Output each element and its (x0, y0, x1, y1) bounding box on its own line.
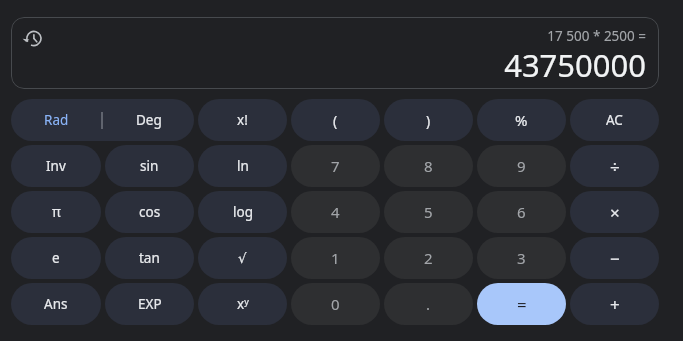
button[interactable]: AC (570, 99, 659, 141)
button[interactable]: − (570, 237, 659, 279)
button[interactable]: 8 (384, 145, 473, 187)
staticText: − (610, 247, 620, 270)
staticText: . (426, 294, 431, 314)
button[interactable]: xy (198, 283, 287, 325)
button[interactable]: 4 (291, 191, 380, 233)
staticText: ÷ (610, 155, 620, 178)
staticText: 4 (331, 202, 340, 222)
button[interactable]: Rad (11, 99, 194, 141)
button[interactable]: EXP (105, 283, 194, 325)
button[interactable]: ÷ (570, 145, 659, 187)
button[interactable]: ( (291, 99, 380, 141)
button[interactable]: ) (384, 99, 473, 141)
button[interactable]: cos (105, 191, 194, 233)
staticText: e (52, 249, 60, 267)
staticText: = (517, 293, 527, 316)
button[interactable]: 3 (477, 237, 566, 279)
button[interactable]: + (570, 283, 659, 325)
button[interactable]: Ans (11, 283, 101, 325)
staticText: AC (606, 111, 623, 129)
button[interactable]: 6 (477, 191, 566, 233)
staticText: 5 (424, 202, 433, 222)
button[interactable]: x! (198, 99, 287, 141)
staticText: π (52, 203, 61, 221)
staticText: 2 (424, 248, 433, 268)
button[interactable]: tan (105, 237, 194, 279)
staticText: ) (426, 111, 431, 130)
staticText: 6 (517, 202, 526, 222)
staticText: 43750000 (504, 44, 646, 86)
button[interactable]: √ (198, 237, 287, 279)
button[interactable]: sin (105, 145, 194, 187)
staticText: x! (237, 111, 248, 129)
button[interactable]: × (570, 191, 659, 233)
staticText: cos (139, 203, 161, 221)
button[interactable]: 2 (384, 237, 473, 279)
staticText: 17 500 * 2500 = (547, 27, 646, 45)
button[interactable]: log (198, 191, 287, 233)
staticText: 1 (331, 248, 340, 268)
staticText: 7 (331, 156, 340, 176)
staticText: ( (333, 111, 338, 130)
button[interactable]: . (384, 283, 473, 325)
staticText: % (515, 110, 528, 130)
button[interactable]: π (11, 191, 101, 233)
staticText: ln (237, 157, 249, 175)
staticText: Ans (44, 295, 68, 313)
staticText: Rad (44, 111, 69, 129)
staticText: 3 (517, 248, 526, 268)
staticText: + (610, 293, 620, 316)
staticText: 8 (424, 156, 433, 176)
button[interactable]: 0 (291, 283, 380, 325)
staticText: Deg (136, 111, 162, 129)
button[interactable]: e (11, 237, 101, 279)
button[interactable]: % (477, 99, 566, 141)
button[interactable]: 1 (291, 237, 380, 279)
button[interactable]: 9 (477, 145, 566, 187)
button[interactable]: ln (198, 145, 287, 187)
button[interactable]: 7 (291, 145, 380, 187)
staticText: 9 (517, 156, 526, 176)
staticText: Inv (46, 157, 66, 175)
staticText: xy (237, 295, 249, 313)
staticText: log (233, 203, 253, 221)
button[interactable]: = (477, 283, 566, 325)
button[interactable]: 5 (384, 191, 473, 233)
button[interactable]: Inv (11, 145, 101, 187)
staticText: sin (140, 157, 159, 175)
staticText: tan (139, 249, 160, 267)
staticText: EXP (138, 295, 162, 313)
staticText: 0 (331, 294, 340, 314)
staticText: √ (238, 250, 247, 266)
staticText: × (610, 201, 620, 224)
button[interactable]: History (16, 24, 48, 56)
